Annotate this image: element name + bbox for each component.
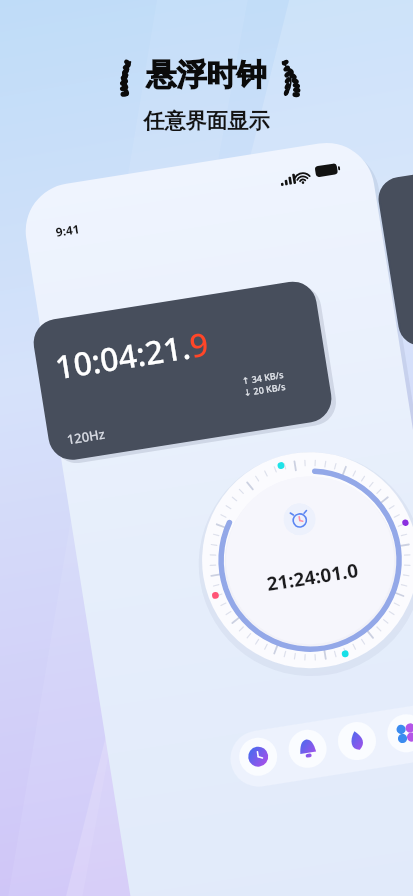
- button[interactable]: [0, 0, 413, 896]
